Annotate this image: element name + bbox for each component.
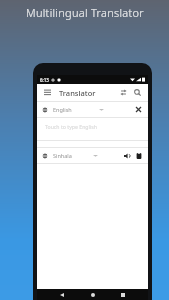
staticText: English: [53, 106, 72, 113]
button[interactable]: Sinhala: [37, 148, 148, 163]
button[interactable]: Copy translation: [134, 151, 143, 160]
staticText: 6:13: [40, 77, 49, 83]
staticText: Multilingual Translator: [26, 5, 144, 20]
staticText: Touch to type English: [45, 123, 97, 130]
button[interactable]: Back: [57, 290, 67, 300]
button[interactable]: Touch to type English: [37, 118, 148, 140]
button[interactable]: Home: [88, 290, 98, 300]
button[interactable]: Search: [132, 87, 143, 98]
staticText: Sinhala: [53, 152, 72, 159]
button[interactable]: Listen: [122, 151, 131, 160]
button[interactable]: Clear text: [134, 105, 143, 114]
staticText: Translator: [59, 88, 96, 98]
button[interactable]: Swap languages: [118, 87, 129, 98]
button[interactable]: English: [37, 102, 148, 117]
button[interactable]: Recent apps: [118, 290, 128, 300]
button[interactable]: Open navigation menu: [42, 87, 53, 98]
